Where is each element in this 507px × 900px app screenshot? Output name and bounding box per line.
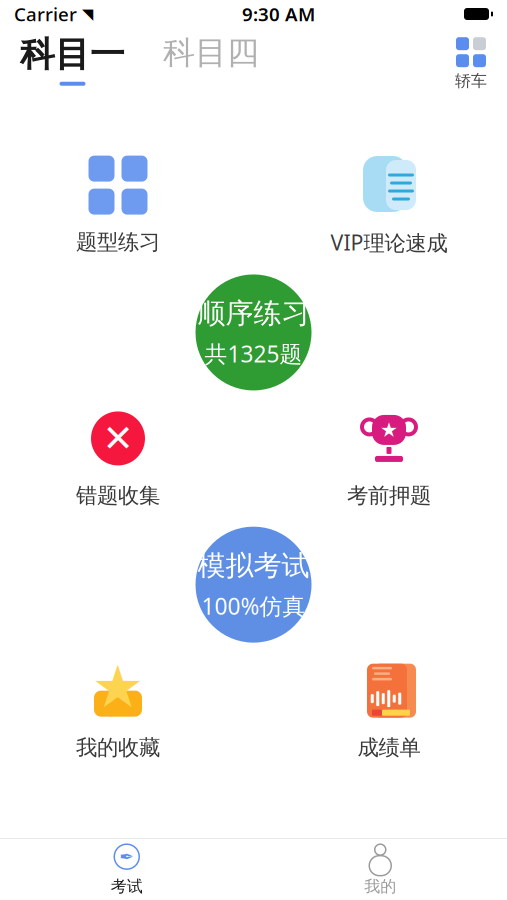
- staticText: 科目四: [163, 33, 259, 72]
- button[interactable]: ✒: [0, 836, 253, 900]
- staticText: ★: [91, 653, 144, 720]
- staticText: 9:30 AM: [242, 2, 315, 26]
- staticText: 考试: [111, 877, 143, 896]
- button[interactable]: 我的: [253, 836, 507, 900]
- staticText: ✕: [102, 417, 133, 460]
- staticText: 共1325题: [204, 339, 302, 369]
- staticText: 100%仿真: [201, 591, 305, 621]
- staticText: 轿车: [455, 71, 487, 91]
- staticText: 科目一: [20, 33, 125, 76]
- button[interactable]: 成绩单: [314, 661, 464, 761]
- staticText: 题型练习: [76, 229, 160, 255]
- staticText: 我的: [364, 877, 396, 896]
- staticText: 错题收集: [76, 482, 160, 509]
- staticText: VIP理论速成: [330, 228, 447, 256]
- staticText: 成绩单: [357, 735, 420, 761]
- staticText: 模拟考试: [197, 548, 309, 583]
- staticText: Carrier: [14, 2, 77, 26]
- button[interactable]: 科目一: [0, 33, 131, 86]
- staticText: 顺序练习: [197, 296, 309, 331]
- button[interactable]: ★: [43, 661, 193, 761]
- staticText: 我的收藏: [76, 735, 160, 761]
- staticText: ◥: [82, 6, 93, 22]
- button[interactable]: VIP理论速成: [314, 154, 464, 256]
- button[interactable]: 选择车型 轿车: [447, 33, 507, 91]
- staticText: ✒: [119, 847, 134, 866]
- button[interactable]: 题型练习: [43, 155, 193, 255]
- button[interactable]: 顺序练习: [195, 274, 311, 390]
- button[interactable]: 科目四: [131, 33, 265, 82]
- button[interactable]: 模拟考试: [195, 527, 311, 643]
- button[interactable]: ★: [314, 408, 464, 509]
- staticText: ★: [380, 419, 398, 441]
- button[interactable]: ✕: [43, 408, 193, 509]
- staticText: 考前押题: [347, 482, 431, 509]
